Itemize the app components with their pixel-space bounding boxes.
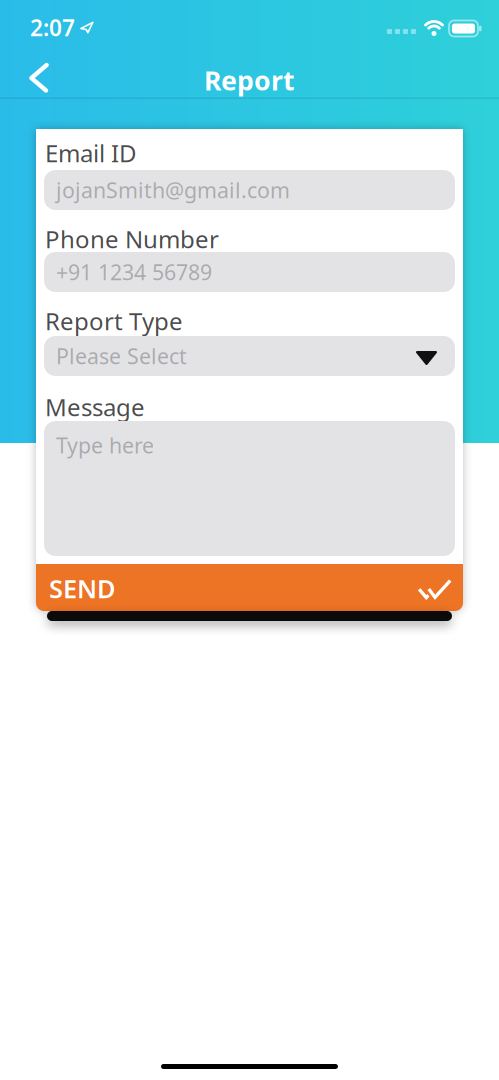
staticText: SEND bbox=[49, 572, 116, 605]
button[interactable]: SEND bbox=[36, 564, 463, 611]
button[interactable]: Select report type bbox=[36, 336, 463, 376]
staticText: Message bbox=[45, 391, 145, 423]
staticText: Report bbox=[204, 62, 295, 98]
button[interactable]: jojanSmith@gmail.com bbox=[36, 170, 463, 210]
staticText: 2:07 bbox=[30, 12, 75, 42]
button[interactable]: Back bbox=[0, 63, 49, 91]
staticText: Email ID bbox=[45, 137, 137, 169]
staticText: Type here bbox=[56, 431, 154, 459]
staticText: Report Type bbox=[45, 305, 183, 337]
button[interactable]: +91 1234 56789 bbox=[36, 252, 463, 292]
staticText: +91 1234 56789 bbox=[56, 258, 212, 286]
staticText: Please Select bbox=[56, 342, 187, 370]
staticText: jojanSmith@gmail.com bbox=[56, 176, 290, 204]
staticText: Phone Number bbox=[45, 223, 219, 255]
